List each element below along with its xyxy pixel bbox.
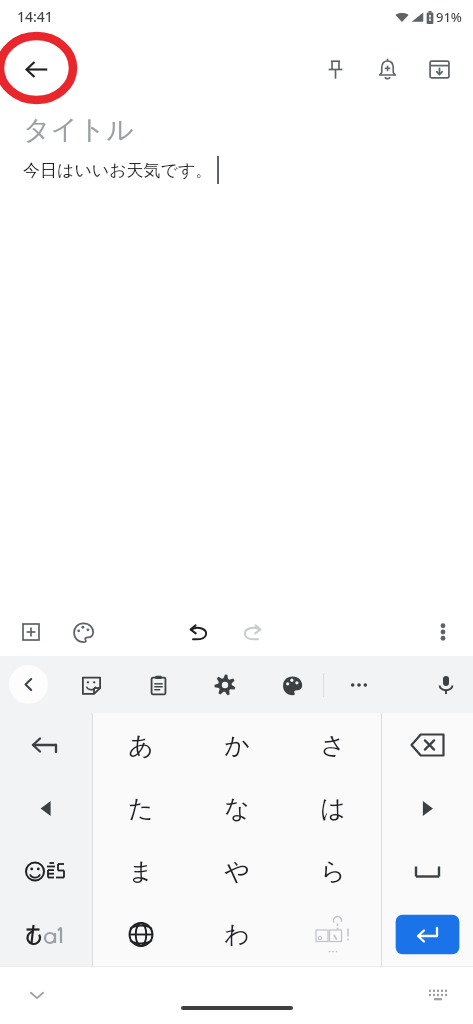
staticText: な — [224, 793, 250, 824]
button[interactable]: Home — [181, 1006, 293, 1010]
button[interactable]: Language — [93, 903, 189, 966]
staticText: や — [224, 856, 250, 887]
button[interactable]: 今日はいいお天気です。 — [23, 156, 219, 184]
button[interactable]: Settings — [206, 666, 244, 704]
button[interactable]: ら — [285, 840, 381, 903]
staticText: さ — [320, 730, 346, 761]
button[interactable]: Input mode — [0, 903, 92, 966]
button[interactable]: Stickers — [72, 666, 110, 704]
button[interactable]: Add reminder — [361, 43, 413, 95]
button[interactable]: Enter — [382, 903, 473, 966]
staticText: た — [128, 793, 154, 824]
staticText: か — [224, 730, 250, 761]
staticText: ま — [128, 856, 154, 887]
button[interactable]: More tools — [340, 666, 378, 704]
button[interactable]: Clipboard — [139, 666, 177, 704]
button[interactable]: Backspace — [382, 713, 473, 777]
button[interactable]: Theme — [273, 666, 311, 704]
button[interactable]: Punctuation — [285, 903, 381, 966]
button[interactable]: わ — [189, 903, 285, 966]
button[interactable]: や — [189, 840, 285, 903]
button[interactable]: Hide keyboard — [19, 977, 55, 1013]
button[interactable]: な — [189, 777, 285, 840]
button[interactable]: More options — [421, 610, 465, 654]
button[interactable]: Add item — [9, 610, 53, 654]
button[interactable]: Cursor right — [382, 777, 473, 840]
button[interactable]: Undo — [0, 713, 92, 777]
button[interactable]: さ — [285, 713, 381, 777]
button[interactable]: は — [285, 777, 381, 840]
button[interactable]: た — [93, 777, 189, 840]
staticText: あ — [128, 730, 154, 761]
button[interactable]: Back — [8, 41, 64, 97]
button[interactable]: Redo — [230, 610, 274, 654]
staticText: わ — [224, 919, 250, 950]
button[interactable]: か — [189, 713, 285, 777]
button[interactable]: Archive — [413, 43, 465, 95]
button[interactable]: あ — [93, 713, 189, 777]
button[interactable]: タイトル — [23, 113, 134, 147]
staticText: 14:41 — [17, 7, 53, 26]
button[interactable]: Emoji and symbols — [0, 840, 92, 903]
button[interactable]: Pin note — [309, 43, 361, 95]
button[interactable]: Change color — [61, 610, 105, 654]
staticText: ら — [320, 856, 346, 887]
staticText: 今日はいいお天気です。 — [23, 160, 213, 181]
button[interactable]: Space — [382, 840, 473, 903]
button[interactable]: Undo — [176, 610, 220, 654]
button[interactable]: ま — [93, 840, 189, 903]
button[interactable]: Expand toolbar — [9, 665, 48, 704]
staticText: 91% — [436, 8, 462, 26]
button[interactable]: Switch keyboard — [420, 977, 456, 1013]
button[interactable]: Cursor left — [0, 777, 92, 840]
button[interactable]: Voice input — [427, 666, 465, 704]
staticText: は — [320, 793, 346, 824]
